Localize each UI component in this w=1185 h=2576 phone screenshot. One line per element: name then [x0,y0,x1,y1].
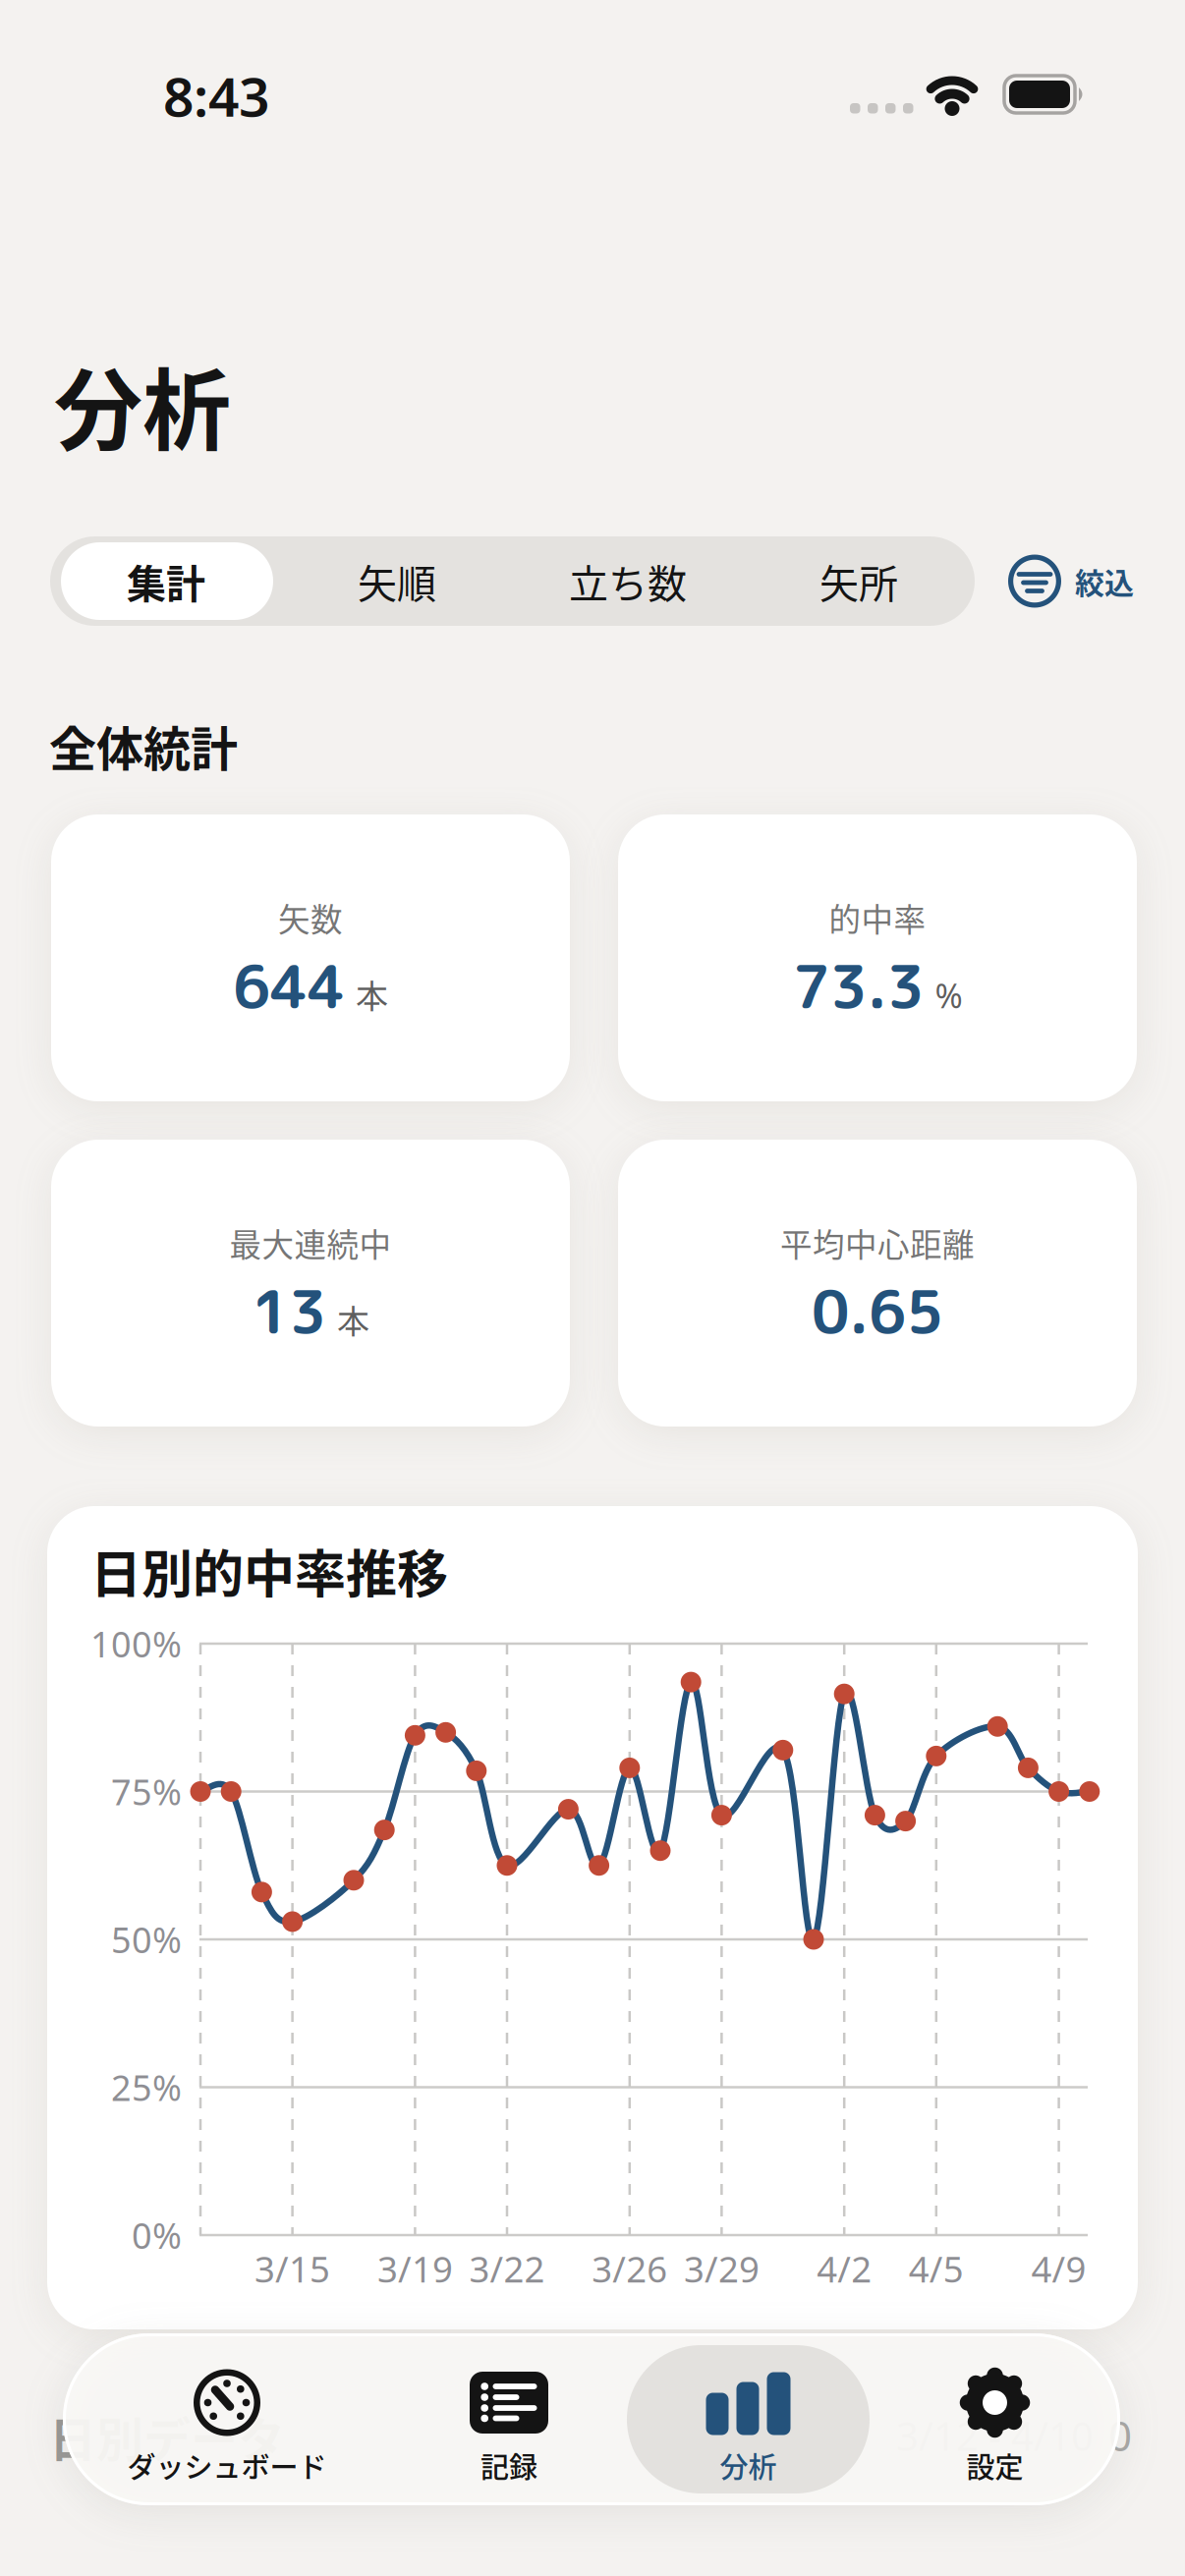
staticText: 0 [1108,2407,1132,2463]
button[interactable]: 記録 [391,2333,627,2505]
staticText: ダッシュボード [127,2445,327,2486]
staticText: 3/29 [684,2244,759,2293]
staticText: 本 [356,971,388,1018]
staticText: 矢順 [358,553,436,610]
staticText: 的中率 [829,895,926,941]
staticText: 73.3 [792,945,924,1027]
staticText: 4/2 [817,2244,872,2293]
button[interactable]: ダッシュボード [63,2333,391,2505]
staticText: 75% [111,1767,182,1816]
button[interactable]: 立ち数 [512,536,743,626]
staticText: 4/9 [1031,2244,1086,2293]
staticText: 3/19 [377,2244,453,2293]
staticText: 設定 [966,2445,1023,2486]
button[interactable]: 設定 [870,2333,1120,2505]
staticText: 13 [252,1270,326,1352]
staticText: 644 [233,945,345,1027]
staticText: 3/22 [469,2244,545,2293]
staticText: 最大連続中 [229,1220,392,1266]
staticText: 分析 [54,340,231,468]
staticText: 絞込 [1075,560,1134,602]
staticText: 4/5 [909,2244,964,2293]
staticText: 本 [337,1296,369,1343]
staticText: 日別的中率推移 [90,1534,448,1608]
staticText: 3/26 [592,2244,667,2293]
staticText: 0% [132,2211,182,2259]
button[interactable]: 矢順 [282,536,512,626]
button[interactable]: 矢所 [743,536,974,626]
staticText: 3/12 - 4/10 [896,2409,1094,2463]
button[interactable]: 分析 [627,2333,870,2505]
staticText: 全体統計 [49,711,238,780]
staticText: 8:43 [163,59,269,133]
staticText: 矢数 [278,895,343,941]
staticText: 3/15 [255,2244,330,2293]
staticText: 50% [111,1915,182,1963]
staticText: 集計 [127,553,205,610]
staticText: 25% [111,2063,182,2111]
staticText: 矢所 [819,553,898,610]
button[interactable]: 絞込 [1008,555,1134,608]
staticText: 分析 [720,2445,777,2486]
button[interactable]: 集計 [51,536,282,626]
staticText: 日別データ [49,2402,285,2470]
staticText: 100% [90,1620,182,1668]
staticText: % [935,972,962,1018]
staticText: 平均中心距離 [780,1220,975,1266]
staticText: 記録 [480,2445,537,2486]
staticText: 0.65 [812,1270,943,1352]
staticText: 立ち数 [569,553,687,610]
